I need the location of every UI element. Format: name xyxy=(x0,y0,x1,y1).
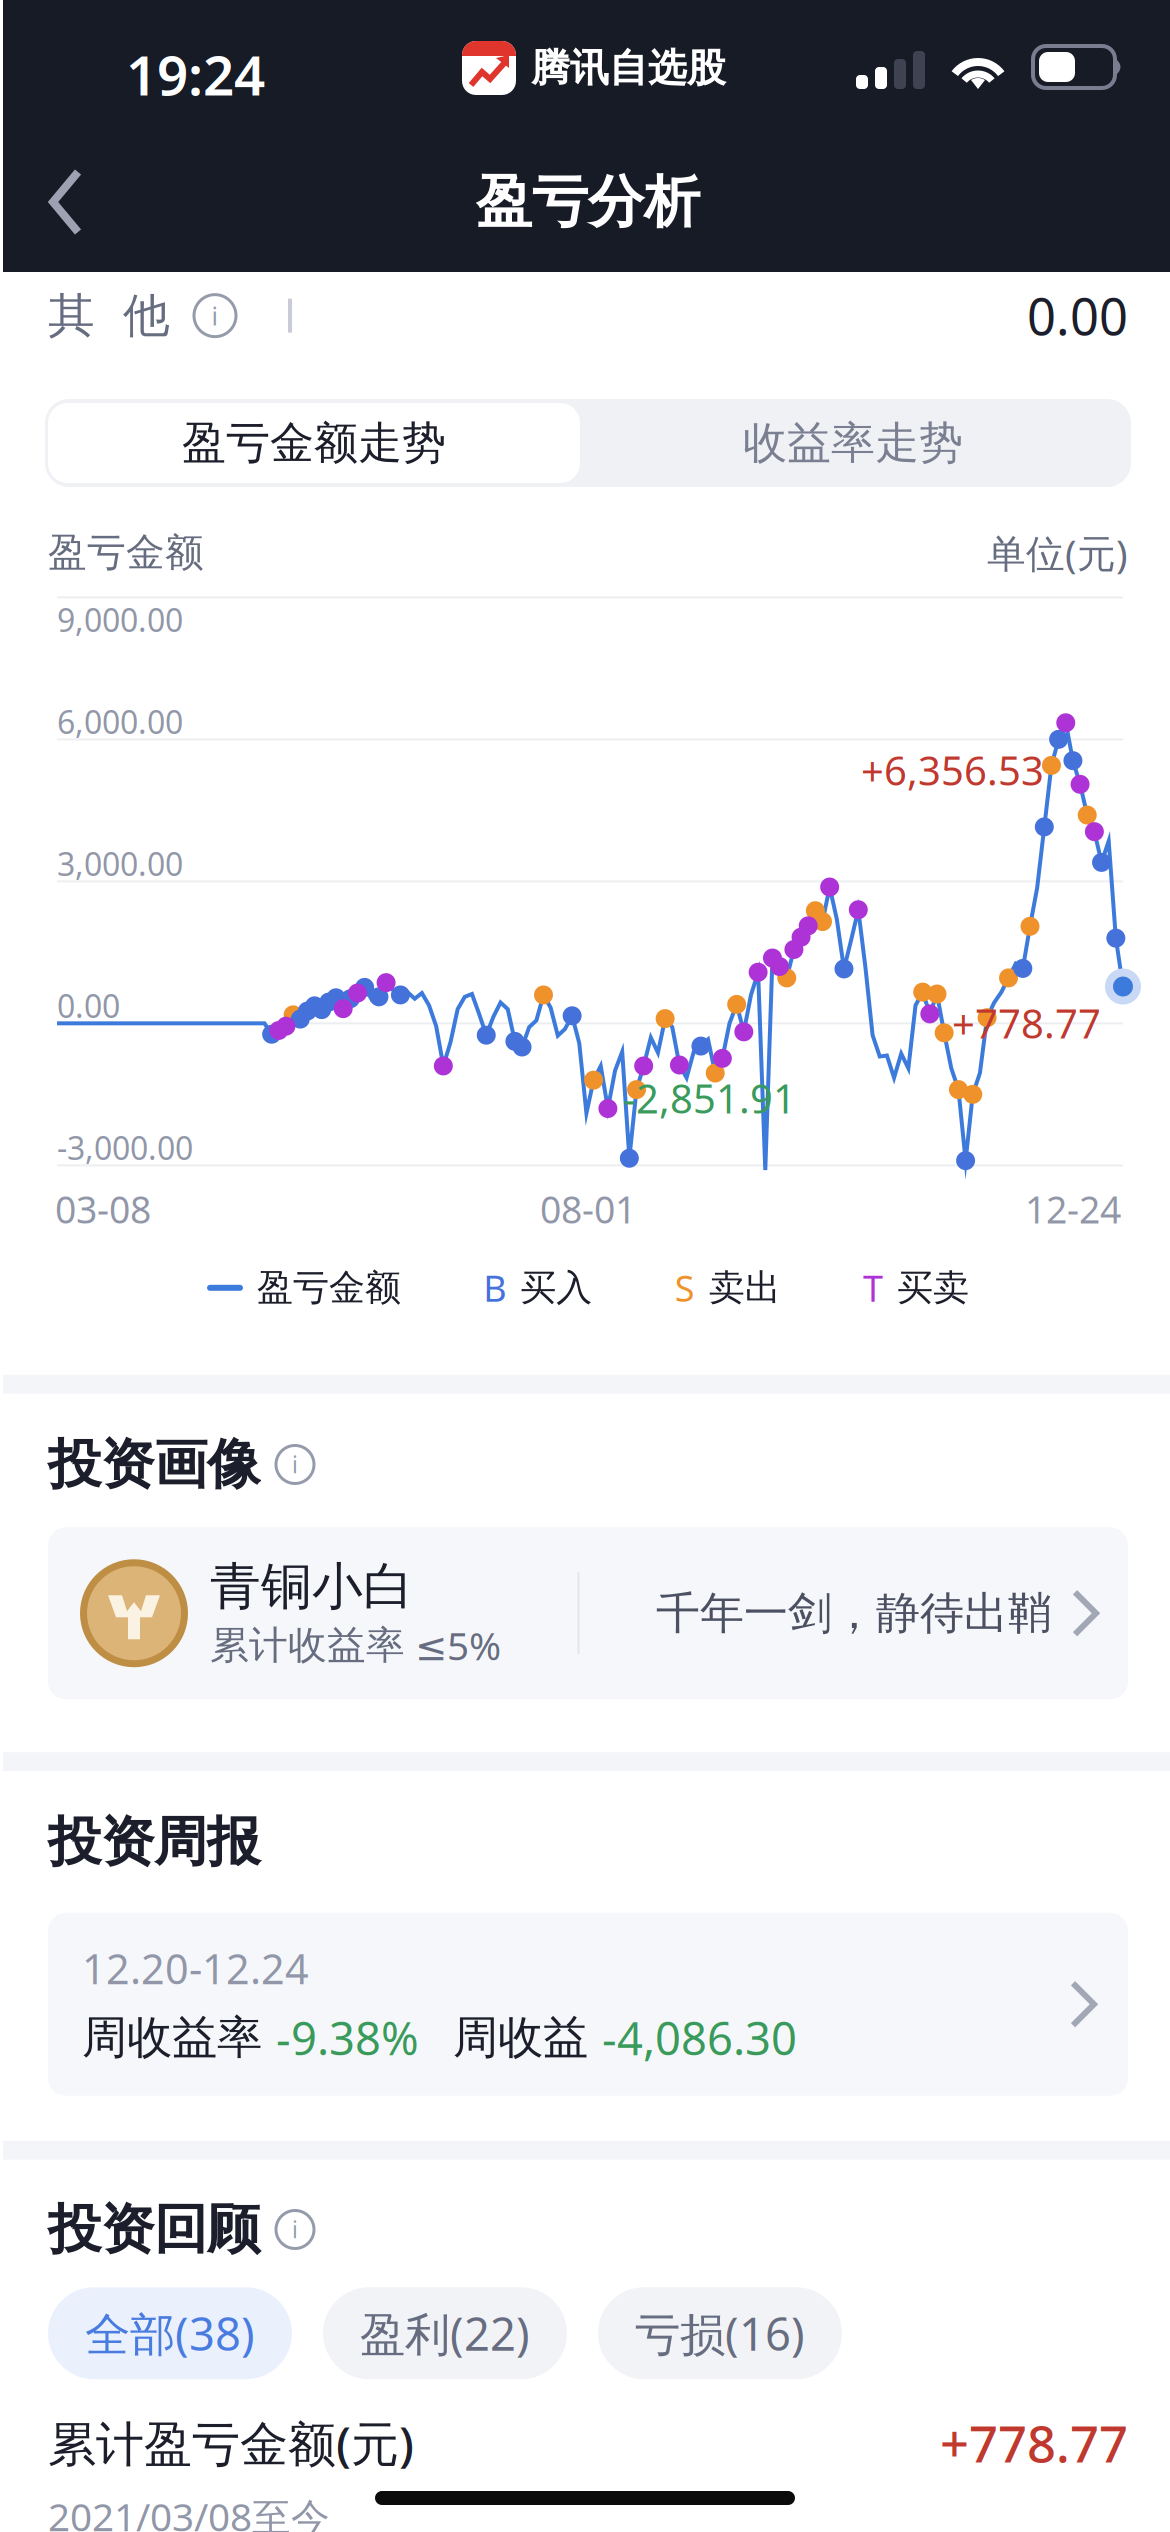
staticText: T xyxy=(863,1264,883,1312)
staticText: 买卖 xyxy=(897,1266,969,1310)
staticText: 2021/03/08至今 xyxy=(48,2490,330,2532)
button[interactable]: 盈亏金额走势 xyxy=(45,403,580,483)
staticText: 周收益 xyxy=(453,2010,588,2066)
staticText: 投资画像 xyxy=(48,1432,260,1497)
staticText: +6,356.53 xyxy=(861,743,1044,796)
staticText: 其 他 xyxy=(48,287,170,344)
button[interactable]: 亏损(16) xyxy=(598,2287,842,2379)
staticText: -3,000.00 xyxy=(57,1126,193,1169)
button[interactable]: 12.20-12.24 xyxy=(48,1913,1128,2096)
staticText: 单位(元) xyxy=(987,527,1128,578)
staticText: 累计盈亏金额(元) xyxy=(48,2411,414,2475)
staticText: -4,086.30 xyxy=(602,2008,797,2068)
staticText: i xyxy=(292,2214,298,2245)
staticText: 投资回顾 xyxy=(48,2197,260,2262)
staticText: 盈亏金额 xyxy=(48,529,204,576)
staticText: 卖出 xyxy=(709,1266,781,1310)
staticText: 08-01 xyxy=(540,1184,636,1234)
staticText: 盈利(22) xyxy=(360,2303,530,2363)
staticText: 买入 xyxy=(520,1266,592,1310)
staticText: 12-24 xyxy=(1025,1184,1121,1234)
staticText: 0.00 xyxy=(57,984,120,1027)
staticText: 全部(38) xyxy=(85,2303,255,2363)
staticText: +778.77 xyxy=(940,2409,1128,2477)
button[interactable]: Back xyxy=(3,132,143,272)
button[interactable]: 全部(38) xyxy=(48,2287,292,2379)
staticText: 0.00 xyxy=(1027,282,1128,349)
staticText: ≤5% xyxy=(415,1620,501,1671)
staticText: 19:24 xyxy=(126,38,265,111)
staticText: +778.77 xyxy=(952,996,1101,1049)
button[interactable]: 青铜小白 xyxy=(48,1527,1128,1699)
staticText: 亏损(16) xyxy=(635,2303,805,2363)
staticText: 千年一剑，静待出鞘 xyxy=(656,1586,1052,1640)
button[interactable]: 收益率走势 xyxy=(583,403,1123,483)
staticText: 收益率走势 xyxy=(743,416,963,470)
staticText: 周收益率 xyxy=(82,2010,262,2066)
button[interactable]: 盈利(22) xyxy=(323,2287,567,2379)
staticText: 6,000.00 xyxy=(57,700,183,743)
staticText: -2,851.91 xyxy=(623,1071,796,1124)
staticText: 03-08 xyxy=(55,1184,151,1234)
staticText: 盈亏金额 xyxy=(257,1266,401,1310)
staticText: 盈亏金额走势 xyxy=(182,416,446,470)
staticText: 投资周报 xyxy=(48,1809,260,1875)
staticText: 盈亏分析 xyxy=(476,168,700,236)
staticText: B xyxy=(483,1264,506,1312)
staticText: 青铜小白 xyxy=(210,1555,414,1618)
staticText: i xyxy=(211,299,218,332)
staticText: 9,000.00 xyxy=(57,598,183,641)
staticText: 腾讯自选股 xyxy=(531,44,726,92)
staticText: 12.20-12.24 xyxy=(82,1941,309,1996)
staticText: S xyxy=(675,1264,695,1312)
staticText: 3,000.00 xyxy=(57,842,183,885)
staticText: -9.38% xyxy=(276,2008,419,2068)
staticText: 累计收益率 xyxy=(210,1622,405,1669)
staticText: i xyxy=(292,1449,298,1479)
